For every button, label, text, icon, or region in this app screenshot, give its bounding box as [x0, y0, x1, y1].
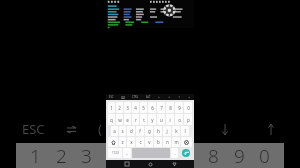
button[interactable]: d	[127, 126, 135, 136]
staticText: j	[166, 128, 168, 134]
button[interactable]: Home	[147, 161, 153, 167]
button[interactable]: ESC	[22, 119, 106, 139]
staticText: 9	[178, 105, 181, 111]
button[interactable]: s	[119, 126, 126, 136]
staticText: 7	[160, 105, 163, 111]
button[interactable]: m	[172, 137, 180, 147]
button[interactable]: p	[184, 114, 192, 125]
staticText: t	[143, 117, 145, 123]
staticText: o	[178, 117, 181, 123]
button[interactable]: 8	[166, 102, 174, 113]
staticText: 1	[110, 105, 113, 111]
button[interactable]: n	[163, 137, 171, 147]
button[interactable]: ?123	[108, 148, 122, 158]
button[interactable]: 7	[157, 102, 165, 113]
button[interactable]: k	[172, 126, 180, 136]
button[interactable]: 9	[175, 102, 183, 113]
staticText: i	[169, 117, 171, 123]
button[interactable]: 1	[16, 143, 106, 168]
staticText: c	[139, 139, 142, 145]
staticText: ?123	[112, 151, 119, 155]
staticText: y	[151, 117, 154, 123]
button[interactable]: r	[132, 114, 139, 125]
staticText: a	[113, 128, 116, 134]
button[interactable]: 8	[194, 143, 284, 168]
staticText: .	[174, 150, 176, 156]
staticText: l	[184, 128, 186, 134]
button[interactable]: w	[116, 114, 123, 125]
staticText: k	[175, 128, 178, 134]
button[interactable]: x	[127, 137, 135, 147]
button[interactable]: i	[166, 114, 174, 125]
staticText: 3	[81, 143, 92, 168]
button[interactable]: e	[124, 114, 131, 125]
staticText: 2	[118, 105, 121, 111]
button[interactable]: Recents	[171, 161, 177, 167]
staticText: f	[139, 128, 141, 134]
staticText: 6	[151, 105, 154, 111]
button[interactable]: Shift	[108, 137, 118, 147]
button[interactable]: Tab	[121, 96, 125, 99]
staticText: 9	[234, 143, 245, 168]
button[interactable]: h	[154, 126, 162, 136]
staticText: d	[130, 128, 133, 134]
staticText: g	[148, 128, 151, 134]
staticText: 1	[30, 143, 41, 168]
button[interactable]: 5	[140, 102, 147, 113]
staticText: ESC	[22, 120, 45, 138]
staticText: p	[187, 117, 190, 123]
button[interactable]: 0	[184, 102, 192, 113]
button[interactable]: .	[171, 148, 178, 158]
staticText: m	[174, 139, 179, 145]
button[interactable]: a	[111, 126, 118, 136]
staticText: (	[98, 120, 102, 138]
staticText: ,	[126, 150, 128, 156]
button[interactable]: ←	[158, 96, 161, 99]
staticText: s	[121, 128, 124, 134]
button[interactable]: →	[188, 96, 191, 99]
button[interactable]: f	[136, 126, 144, 136]
staticText: 0	[187, 105, 190, 111]
staticText: 0	[259, 143, 270, 168]
staticText: b	[157, 139, 160, 145]
button[interactable]: ALT	[146, 95, 151, 99]
staticText: 8	[169, 105, 172, 111]
staticText: q	[110, 117, 113, 123]
button[interactable]: u	[157, 114, 165, 125]
button[interactable]: 2	[116, 102, 123, 113]
button[interactable]: ,	[123, 148, 131, 158]
button[interactable]: ESC	[106, 94, 194, 100]
button[interactable]: l	[181, 126, 189, 136]
button[interactable]: Backspace	[181, 137, 192, 147]
button[interactable]: t	[140, 114, 147, 125]
button[interactable]: c	[136, 137, 144, 147]
staticText: z	[121, 139, 124, 145]
button[interactable]: Back	[124, 161, 130, 167]
button[interactable]: ↑	[178, 96, 181, 99]
staticText: 8	[208, 143, 219, 168]
button[interactable]: ↓	[168, 96, 171, 99]
button[interactable]: g	[145, 126, 153, 136]
button[interactable]: CTRL	[132, 95, 139, 99]
button[interactable]: Arrow keys	[206, 119, 286, 139]
button[interactable]: 3	[124, 102, 131, 113]
button[interactable]: j	[163, 126, 171, 136]
staticText: v	[148, 139, 151, 145]
staticText: 4	[134, 105, 137, 111]
button[interactable]: 6	[148, 102, 156, 113]
staticText: e	[126, 117, 129, 123]
button[interactable]: y	[148, 114, 156, 125]
button[interactable]: v	[145, 137, 153, 147]
button[interactable]: z	[119, 137, 126, 147]
button[interactable]: Enter	[179, 148, 192, 158]
button[interactable]: q	[108, 114, 115, 125]
staticText: h	[157, 128, 160, 134]
staticText: 5	[142, 105, 145, 111]
staticText: u	[160, 117, 163, 123]
button[interactable]: o	[175, 114, 183, 125]
button[interactable]: b	[154, 137, 162, 147]
button[interactable]: 1	[108, 102, 115, 113]
button[interactable]: ESC	[109, 95, 114, 99]
button[interactable]: 4	[132, 102, 139, 113]
